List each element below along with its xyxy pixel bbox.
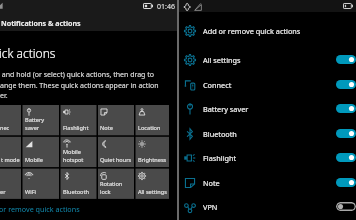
button[interactable]: Flashlight [179,146,356,170]
button[interactable]: WiFi [23,169,60,199]
button[interactable] [0,137,21,167]
staticText: Mobile hotspot [63,148,84,164]
staticText: Notifications & actions [1,18,81,28]
staticText: All settings [203,55,241,65]
button[interactable]: Mobile hotspot [61,137,97,167]
button[interactable]: VPN [179,195,356,219]
staticText: t mode [1,156,20,164]
staticText: Battery saver [25,116,45,132]
button[interactable]: Switch on [336,129,356,138]
button[interactable]: Switch on [336,55,356,64]
staticText: WiFi [25,188,36,196]
button[interactable]: Battery saver [179,97,356,121]
staticText: Add or remove quick actions [203,26,301,36]
staticText: Connect [203,80,232,90]
button[interactable]: Connect [179,73,356,97]
button[interactable]: Note [179,171,356,195]
staticText: Mobile [25,156,43,164]
button[interactable]: Mobile [23,137,60,167]
button[interactable]: nect [0,105,10,135]
staticText: or remove quick actions [0,204,80,214]
staticText: Note [100,124,113,132]
button[interactable]: All settings [136,169,170,199]
staticText: and hold (or select) quick actions, then… [0,70,159,100]
staticText: Bluetooth [203,129,237,139]
staticText: Quiet hours [100,156,132,164]
button[interactable]: t mode [0,137,20,167]
staticText: Brightness [138,156,167,164]
staticText: Flashlight [203,153,237,163]
button[interactable]: Bluetooth [179,122,356,146]
button[interactable]: Quiet hours [98,137,134,167]
button[interactable]: Battery saver [23,105,60,135]
staticText: era [0,188,8,196]
button[interactable]: Switch on [336,80,356,89]
staticText: Battery saver [203,104,249,114]
button[interactable]: All settings [179,48,356,72]
button[interactable]: Brightness [136,137,170,167]
staticText: Note [203,178,220,188]
staticText: Rotation lock [100,180,123,196]
staticText: 01:46 [157,2,175,12]
button[interactable]: Bluetooth [61,169,97,199]
button[interactable]: Switch on [336,153,356,162]
button[interactable]: Note [98,105,134,135]
staticText: Flashlight [63,124,89,132]
button[interactable]: era [0,169,8,199]
button[interactable]: Add or remove quick actions [179,19,356,43]
button[interactable]: Switch on [336,104,356,113]
staticText: nect [0,124,10,132]
button[interactable] [0,105,21,135]
staticText: All settings [138,188,167,196]
button[interactable]: Location [136,105,170,135]
button[interactable]: Switch off [336,202,356,211]
staticText: VPN [203,202,218,212]
staticText: Bluetooth [63,188,89,196]
button[interactable]: Flashlight [61,105,97,135]
button[interactable] [0,169,21,199]
button[interactable]: Switch on [336,178,356,187]
button[interactable]: Rotation lock [98,169,134,199]
staticText: ick actions [0,45,56,61]
staticText: Location [138,124,161,132]
